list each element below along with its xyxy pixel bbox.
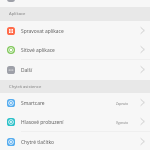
button[interactable]: Smartcare <box>0 93 150 112</box>
staticText: Smartcare <box>21 100 45 107</box>
staticText: Chytrá asistence <box>9 84 42 90</box>
button[interactable]: Chytré tlačítko <box>0 132 150 150</box>
button[interactable]: Síťové aplikace <box>0 40 150 59</box>
staticText: Síťové aplikace <box>21 47 55 54</box>
button[interactable]: Spravovat aplikace <box>0 21 150 40</box>
staticText: Vypnuto <box>116 121 129 125</box>
staticText: Chytré tlačítko <box>21 139 55 146</box>
staticText: Další <box>21 67 33 74</box>
button[interactable]: Hlasové probuzení <box>0 112 150 131</box>
staticText: Hlasové probuzení <box>21 119 64 126</box>
button[interactable]: Další <box>0 60 150 79</box>
staticText: Zapnuto <box>116 102 129 106</box>
staticText: Aplikace <box>9 11 26 17</box>
staticText: Spravovat aplikace <box>21 28 64 35</box>
